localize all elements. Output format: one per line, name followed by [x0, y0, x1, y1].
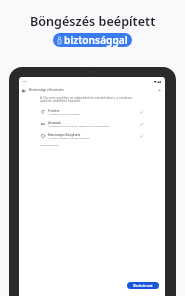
staticText: Ellenőrzés most	[133, 284, 153, 288]
staticText: Biztonsági ellenőrzés	[29, 87, 64, 92]
staticText: További információ	[40, 144, 59, 147]
staticText: Jelszavak	[48, 121, 143, 125]
staticText: biztonsággal	[64, 33, 128, 47]
button[interactable]: Ellenőrzés most	[127, 282, 159, 289]
staticText: A Chrome segíthet az adatvédelem növelés…	[40, 95, 135, 103]
staticText: 9:30	[22, 80, 27, 83]
staticText: A fokozott védelem be van kapcsolva	[48, 136, 143, 139]
staticText: Biztonságos Böngészés	[48, 133, 143, 137]
staticText: A Google Chrome naprakész	[48, 112, 143, 115]
button[interactable]: Jelszavak	[36, 119, 164, 130]
staticText: Frissítve	[48, 109, 143, 113]
button[interactable]: Frissítve	[36, 107, 164, 118]
button[interactable]: Profil	[158, 89, 161, 92]
button[interactable]: biztonsággal	[53, 33, 132, 47]
button[interactable]: Biztonságos Böngészés	[36, 131, 164, 142]
staticText: Nincsenek olyan jelszavak, amelyek kiszi…	[48, 124, 143, 127]
button[interactable]: További információ	[40, 144, 59, 147]
button[interactable]: Vissza	[19, 86, 28, 95]
staticText: Böngészés beépített	[30, 13, 156, 30]
